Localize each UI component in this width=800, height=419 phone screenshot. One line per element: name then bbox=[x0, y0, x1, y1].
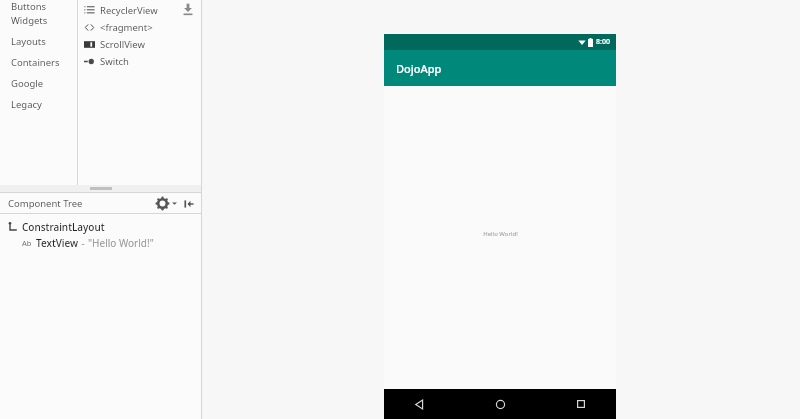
staticText: Legacy bbox=[11, 98, 42, 111]
button[interactable]: Buttons bbox=[0, 0, 77, 10]
staticText: ConstraintLayout bbox=[22, 220, 105, 234]
button[interactable]: Settings bbox=[156, 197, 169, 210]
button[interactable]: Home bbox=[489, 393, 511, 415]
button[interactable]: RecyclerView bbox=[78, 2, 201, 19]
button[interactable]: Recents bbox=[570, 393, 592, 415]
staticText: RecyclerView bbox=[100, 4, 158, 17]
staticText: Hello World! bbox=[483, 230, 518, 238]
staticText: - bbox=[79, 236, 88, 250]
staticText: Switch bbox=[100, 55, 129, 68]
staticText: TextView bbox=[36, 236, 79, 250]
button[interactable]: <fragment> bbox=[78, 19, 201, 36]
staticText: "Hello World!" bbox=[88, 236, 154, 250]
staticText: 8:00 bbox=[596, 37, 610, 47]
staticText: <fragment> bbox=[100, 21, 153, 34]
staticText: Google bbox=[11, 77, 44, 90]
button[interactable]: Switch bbox=[78, 53, 201, 70]
button[interactable]: Containers bbox=[0, 52, 77, 73]
staticText: Ab bbox=[22, 238, 32, 248]
button[interactable]: Back bbox=[408, 393, 430, 415]
staticText: Layouts bbox=[11, 35, 46, 48]
button[interactable]: Widgets bbox=[0, 10, 77, 31]
staticText: ScrollView bbox=[100, 38, 145, 51]
button[interactable]: Download bbox=[181, 2, 195, 16]
button[interactable]: Layouts bbox=[0, 31, 77, 52]
staticText: Widgets bbox=[11, 14, 48, 27]
button[interactable]: Google bbox=[0, 73, 77, 94]
button[interactable]: Collapse bbox=[183, 198, 195, 210]
staticText: Component Tree bbox=[8, 197, 83, 210]
button[interactable]: ConstraintLayout bbox=[0, 219, 201, 235]
staticText: Containers bbox=[11, 56, 60, 69]
staticText: Buttons bbox=[11, 0, 47, 10]
button[interactable]: ScrollView bbox=[78, 36, 201, 53]
staticText: DojoApp bbox=[396, 61, 442, 76]
button[interactable]: Legacy bbox=[0, 94, 77, 115]
button[interactable]: Ab bbox=[0, 235, 201, 251]
